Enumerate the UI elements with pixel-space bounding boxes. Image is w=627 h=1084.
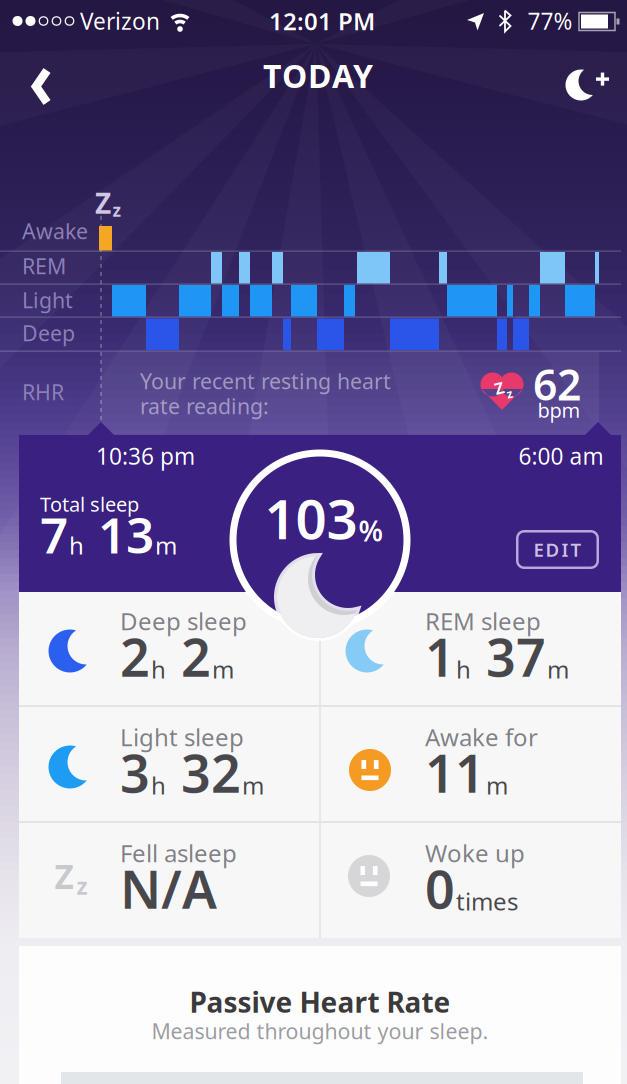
staticText: 0 bbox=[425, 854, 455, 923]
staticText: m bbox=[486, 769, 508, 801]
button[interactable]: Add sleep bbox=[551, 53, 613, 115]
staticText: Awake bbox=[22, 217, 88, 245]
staticText: 37 bbox=[472, 622, 546, 691]
staticText: Deep bbox=[22, 319, 75, 347]
staticText: RHR bbox=[22, 378, 64, 406]
staticText: REM sleep bbox=[425, 605, 541, 637]
staticText: h bbox=[456, 653, 471, 685]
staticText: times bbox=[456, 885, 518, 917]
staticText: z bbox=[112, 198, 121, 221]
staticText: 11 bbox=[425, 738, 485, 807]
staticText: 103 bbox=[264, 482, 357, 554]
staticText: 13 bbox=[85, 501, 154, 567]
staticText: Woke up bbox=[425, 837, 525, 869]
button[interactable]: Back bbox=[20, 60, 64, 113]
staticText: 7 bbox=[40, 501, 68, 567]
staticText: Measured throughout your sleep. bbox=[151, 1017, 488, 1045]
staticText: m bbox=[547, 653, 569, 685]
staticText: Z bbox=[95, 184, 111, 222]
staticText: 32 bbox=[167, 738, 241, 807]
staticText: 62 bbox=[533, 356, 581, 412]
staticText: z bbox=[506, 385, 512, 401]
staticText: Light bbox=[22, 286, 73, 314]
staticText: bpm bbox=[537, 397, 580, 423]
staticText: N/A bbox=[120, 854, 217, 923]
staticText: Z bbox=[494, 377, 503, 399]
staticText: m bbox=[242, 769, 264, 801]
staticText: Z bbox=[54, 854, 73, 898]
staticText: REM bbox=[22, 252, 66, 280]
staticText: 2 bbox=[120, 622, 150, 691]
staticText: Passive Heart Rate bbox=[189, 983, 450, 1021]
staticText: 6:00 am bbox=[518, 441, 603, 471]
staticText: Awake for bbox=[425, 721, 538, 753]
staticText: h bbox=[151, 653, 166, 685]
staticText: z bbox=[76, 871, 87, 901]
staticText: EDIT bbox=[533, 537, 581, 562]
staticText: m bbox=[155, 529, 177, 561]
staticText: rate reading: bbox=[140, 392, 269, 420]
staticText: Fell asleep bbox=[120, 837, 237, 869]
staticText: 3 bbox=[120, 738, 150, 807]
staticText: Verizon bbox=[80, 6, 160, 36]
staticText: Your recent resting heart bbox=[140, 367, 391, 395]
staticText: m bbox=[212, 653, 234, 685]
staticText: Deep sleep bbox=[120, 605, 247, 637]
staticText: Light sleep bbox=[120, 721, 244, 753]
staticText: % bbox=[358, 512, 383, 549]
staticText: h bbox=[151, 769, 166, 801]
staticText: 77% bbox=[527, 6, 572, 36]
staticText: h bbox=[69, 529, 84, 561]
staticText: 1 bbox=[425, 622, 455, 691]
staticText: 10:36 pm bbox=[96, 441, 195, 471]
staticText: Total sleep bbox=[40, 491, 139, 517]
staticText: 2 bbox=[167, 622, 211, 691]
staticText: 12:01 PM bbox=[269, 5, 375, 37]
staticText: TODAY bbox=[263, 54, 373, 97]
button[interactable]: EDIT bbox=[516, 530, 599, 569]
